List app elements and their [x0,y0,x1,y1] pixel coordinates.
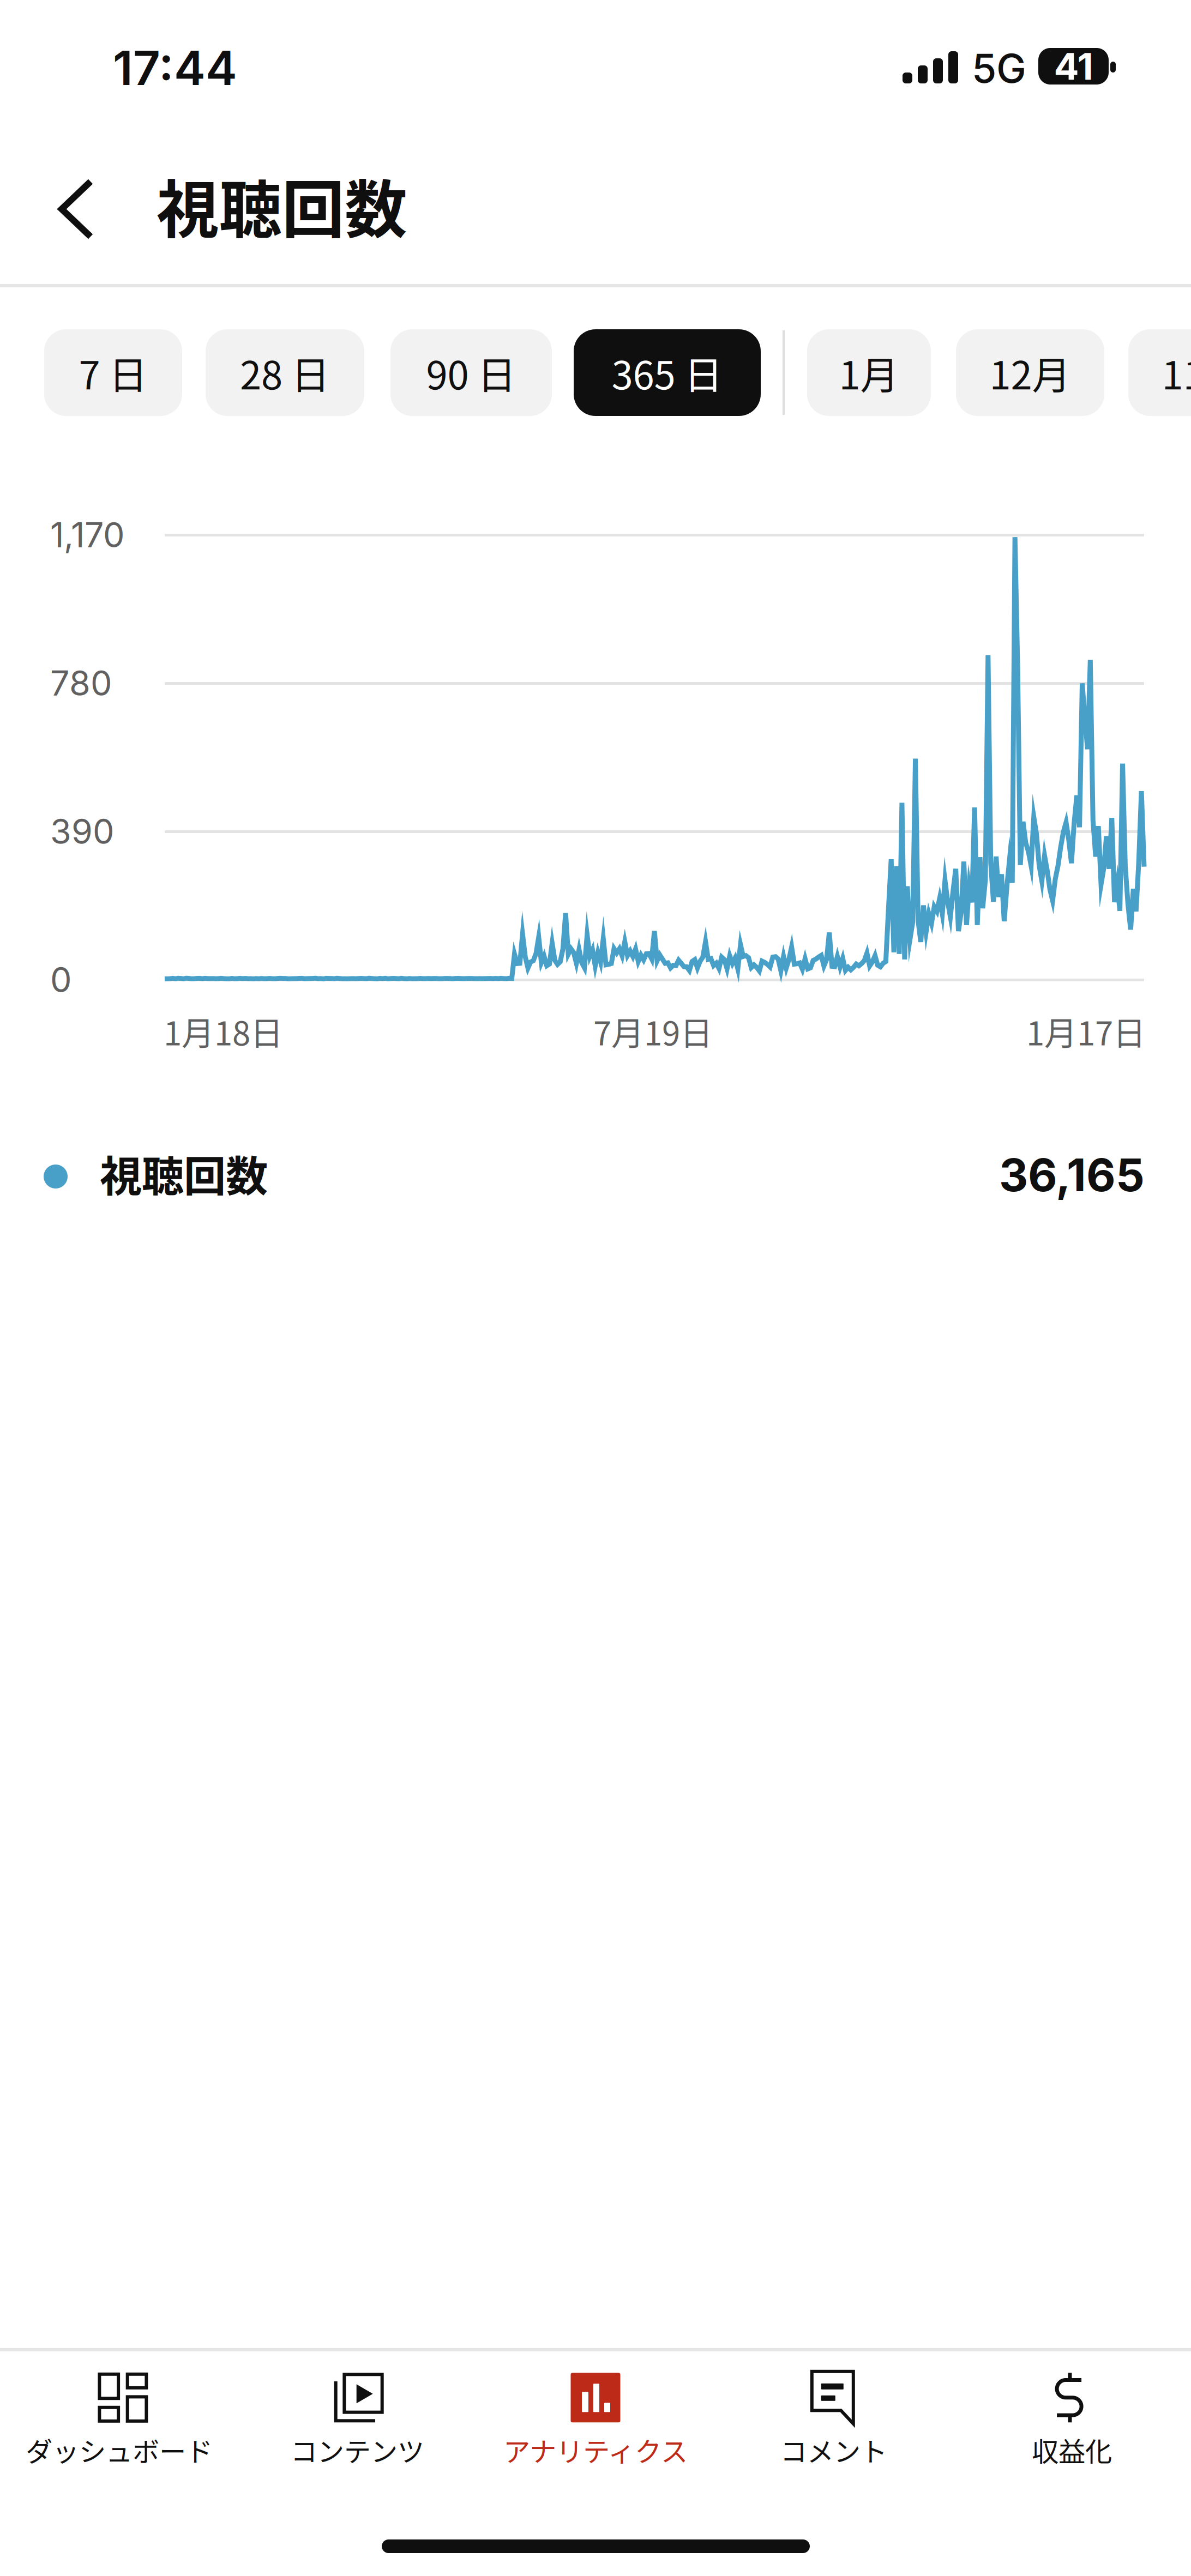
button[interactable]: 365 日 [574,329,761,416]
button[interactable]: ダッシュボード [0,2363,238,2476]
staticText: 1月18日 [164,1008,283,1055]
staticText: 1月 [839,345,899,400]
staticText: 12月 [990,345,1071,400]
button[interactable]: コンテンツ [238,2363,476,2476]
staticText: 0 [50,959,72,1000]
button[interactable]: 戻る [31,155,121,263]
staticText: 11月 [1162,345,1191,400]
staticText: 28 日 [240,345,330,400]
staticText: 7 日 [79,345,148,400]
staticText: 1,170 [50,514,125,555]
staticText: コンテンツ [290,2430,424,2469]
staticText: 収益化 [1032,2430,1112,2469]
button[interactable]: 12月 [956,329,1104,416]
button[interactable]: コメント [715,2363,953,2476]
button[interactable]: 90 日 [390,329,552,416]
staticText: 1月17日 [1026,1008,1146,1055]
button[interactable]: 11月 [1128,329,1191,416]
button[interactable]: 28 日 [206,329,364,416]
button[interactable]: 1月 [807,329,931,416]
staticText: ダッシュボード [26,2430,213,2469]
staticText: 365 日 [612,345,723,400]
staticText: 7月19日 [593,1008,713,1055]
button[interactable]: 7 日 [44,329,182,416]
button[interactable]: 視聴回数 [157,161,484,249]
staticText: 390 [50,811,115,852]
staticText: 17:44 [113,39,237,96]
staticText: 視聴回数 [100,1143,268,1204]
staticText: 90 日 [426,345,516,400]
staticText: 視聴回数 [157,160,407,250]
staticText: アナリティクス [503,2430,688,2469]
button[interactable]: 収益化 [953,2363,1191,2476]
staticText: 41 [1054,44,1093,89]
staticText: コメント [780,2430,887,2469]
button[interactable]: アナリティクス [476,2363,715,2476]
staticText: 5G [972,44,1026,92]
staticText: 780 [50,662,112,704]
staticText: 36,165 [999,1148,1145,1202]
